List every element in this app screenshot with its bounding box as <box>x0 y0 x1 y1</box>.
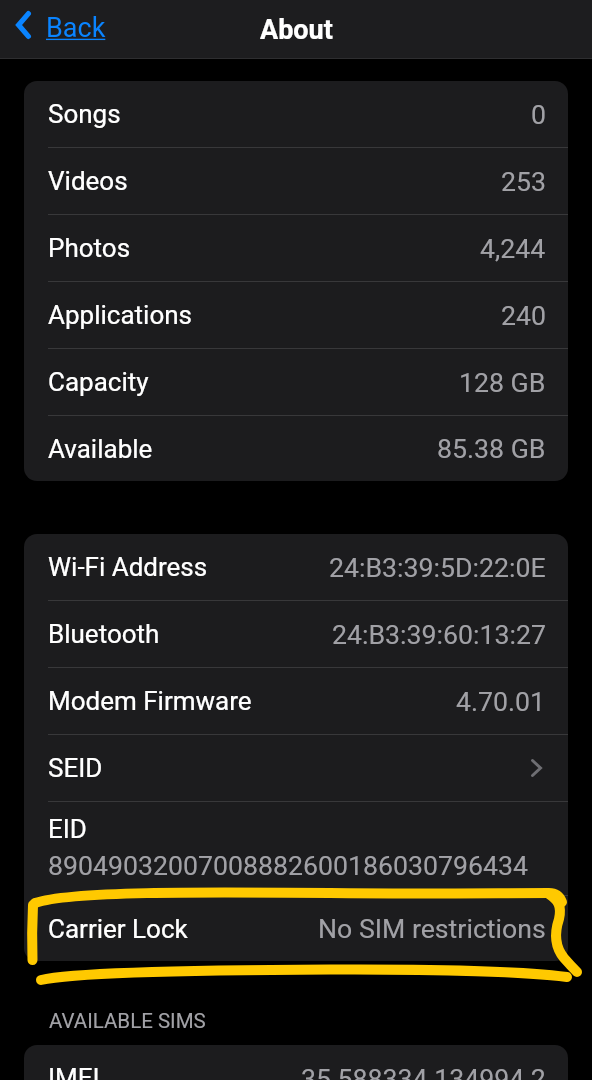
staticText: Back <box>46 12 106 44</box>
staticText: Applications <box>48 300 192 330</box>
button[interactable]: Bluetooth <box>24 601 568 667</box>
staticText: 253 <box>501 166 546 197</box>
staticText: Carrier Lock <box>48 914 188 944</box>
staticText: About <box>260 14 333 46</box>
staticText: 35 588334 134994 2 <box>301 1063 546 1080</box>
staticText: Wi-Fi Address <box>48 552 208 582</box>
button[interactable]: SEID <box>24 735 568 801</box>
staticText: 24:B3:39:5D:22:0E <box>329 552 546 583</box>
staticText: 128 GB <box>459 367 546 398</box>
staticText: 4,244 <box>480 233 546 264</box>
staticText: Capacity <box>48 367 149 397</box>
button[interactable]: IMEI <box>24 1045 568 1080</box>
staticText: IMEI <box>48 1063 100 1080</box>
button[interactable]: Applications <box>24 282 568 348</box>
button[interactable]: Back <box>8 3 116 53</box>
button[interactable]: Wi-Fi Address <box>24 534 568 600</box>
staticText: SEID <box>48 753 103 783</box>
button[interactable]: EID <box>24 802 568 895</box>
button[interactable]: Capacity <box>24 349 568 415</box>
staticText: 0 <box>531 99 546 130</box>
staticText: No SIM restrictions <box>318 913 546 944</box>
staticText: 89049032007008882600186030796434 <box>48 850 528 881</box>
staticText: Photos <box>48 233 131 263</box>
staticText: AVAILABLE SIMS <box>49 1009 206 1033</box>
button[interactable]: Songs <box>24 81 568 147</box>
staticText: EID <box>48 814 87 844</box>
button[interactable]: Available <box>24 416 568 481</box>
staticText: Songs <box>48 99 121 129</box>
staticText: Available <box>48 434 153 464</box>
staticText: 240 <box>501 300 546 331</box>
staticText: 85.38 GB <box>437 433 546 464</box>
staticText: 24:B3:39:60:13:27 <box>332 619 546 650</box>
button[interactable]: Videos <box>24 148 568 214</box>
staticText: Videos <box>48 166 128 196</box>
button[interactable]: Carrier Lock <box>24 896 568 961</box>
staticText: Modem Firmware <box>48 686 252 716</box>
button[interactable]: Modem Firmware <box>24 668 568 734</box>
other: Open <box>531 759 542 777</box>
staticText: Bluetooth <box>48 619 160 649</box>
button[interactable]: Photos <box>24 215 568 281</box>
staticText: 4.70.01 <box>456 686 546 717</box>
